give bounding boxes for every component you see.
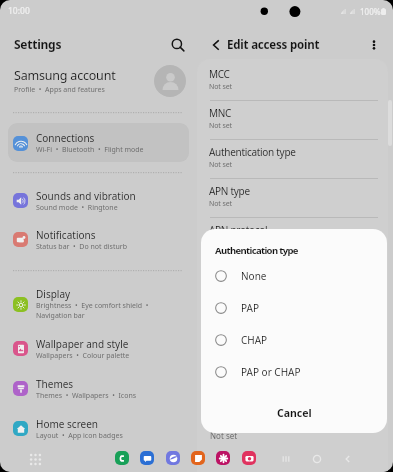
button[interactable]: Samsung account — [0, 62, 198, 100]
staticText: Not set — [209, 238, 233, 248]
staticText: Display — [36, 287, 71, 301]
button[interactable]: Sounds and vibration — [8, 181, 189, 220]
button[interactable]: Phone — [115, 451, 129, 465]
button[interactable]: Internet — [166, 451, 180, 465]
staticText: Wallpaper and style — [36, 337, 129, 351]
button[interactable]: Apps — [25, 449, 45, 469]
staticText: APN type — [209, 184, 250, 198]
button[interactable]: None — [201, 260, 387, 292]
button[interactable]: Notifications — [8, 220, 189, 259]
staticText: Sounds and vibration — [36, 189, 136, 203]
staticText: Not set — [209, 199, 233, 209]
button[interactable]: Home screen — [8, 409, 189, 448]
staticText: MNC — [209, 106, 232, 120]
button[interactable]: Search — [168, 35, 188, 55]
button[interactable]: MNC — [198, 100, 393, 139]
staticText: Sound mode • Ringtone — [36, 203, 118, 213]
button[interactable]: More options — [364, 35, 384, 55]
button[interactable]: Recents — [276, 449, 296, 469]
staticText: Connections — [36, 131, 95, 145]
button[interactable]: PAP or CHAP — [201, 356, 387, 388]
button[interactable]: MCC — [198, 61, 393, 100]
staticText: Not set — [210, 430, 238, 441]
staticText: Status bar • Do not disturb — [36, 242, 127, 252]
staticText: Cancel — [277, 406, 312, 420]
staticText: Not set — [209, 121, 233, 131]
button[interactable]: Home — [307, 449, 327, 469]
staticText: Wallpapers • Colour palette — [36, 351, 130, 361]
button[interactable]: Back — [206, 35, 226, 55]
staticText: Edit access point — [227, 37, 320, 53]
staticText: Layout • App icon badges — [36, 431, 123, 441]
button[interactable]: APN protocol — [198, 217, 393, 256]
button[interactable]: Authentication type — [198, 139, 393, 178]
staticText: PAP — [241, 301, 259, 315]
staticText: MCC — [209, 67, 230, 81]
staticText: 100% — [360, 6, 381, 17]
staticText: Notifications — [36, 228, 96, 242]
staticText: Wi-Fi • Bluetooth • Flight mode — [36, 145, 144, 155]
staticText: Not set — [209, 160, 233, 170]
staticText: Settings — [14, 36, 62, 52]
staticText: Brightness • Eye comfort shield • — [36, 301, 149, 311]
button[interactable]: Galaxy Store — [216, 451, 230, 465]
staticText: Navigation bar — [36, 311, 85, 321]
button[interactable]: Themes — [8, 369, 189, 408]
staticText: CHAP — [241, 333, 268, 347]
button[interactable]: Wallpaper and style — [8, 329, 189, 368]
button[interactable]: CHAP — [201, 324, 387, 356]
staticText: Themes • Wallpapers • Icons — [36, 391, 137, 401]
staticText: Authentication type — [209, 145, 296, 159]
button[interactable]: Messages — [140, 451, 154, 465]
staticText: 10:00 — [8, 5, 30, 17]
button[interactable]: PAP — [201, 292, 387, 324]
staticText: Authentication type — [215, 244, 298, 257]
staticText: Themes — [36, 377, 74, 391]
staticText: None — [241, 269, 267, 283]
staticText: Profile • Apps and features — [14, 85, 105, 95]
button[interactable]: Camera — [242, 451, 256, 465]
button[interactable]: Display — [8, 282, 189, 326]
button[interactable]: Notes — [191, 451, 205, 465]
staticText: Samsung account — [14, 67, 116, 84]
staticText: APN protocol — [209, 223, 268, 237]
staticText: Not set — [209, 82, 233, 92]
staticText: Home screen — [36, 417, 99, 431]
button[interactable]: APN type — [198, 178, 393, 217]
staticText: PAP or CHAP — [241, 365, 301, 379]
button[interactable]: Cancel — [201, 395, 387, 431]
button[interactable]: Back — [338, 449, 358, 469]
button[interactable]: Connections — [8, 123, 189, 162]
